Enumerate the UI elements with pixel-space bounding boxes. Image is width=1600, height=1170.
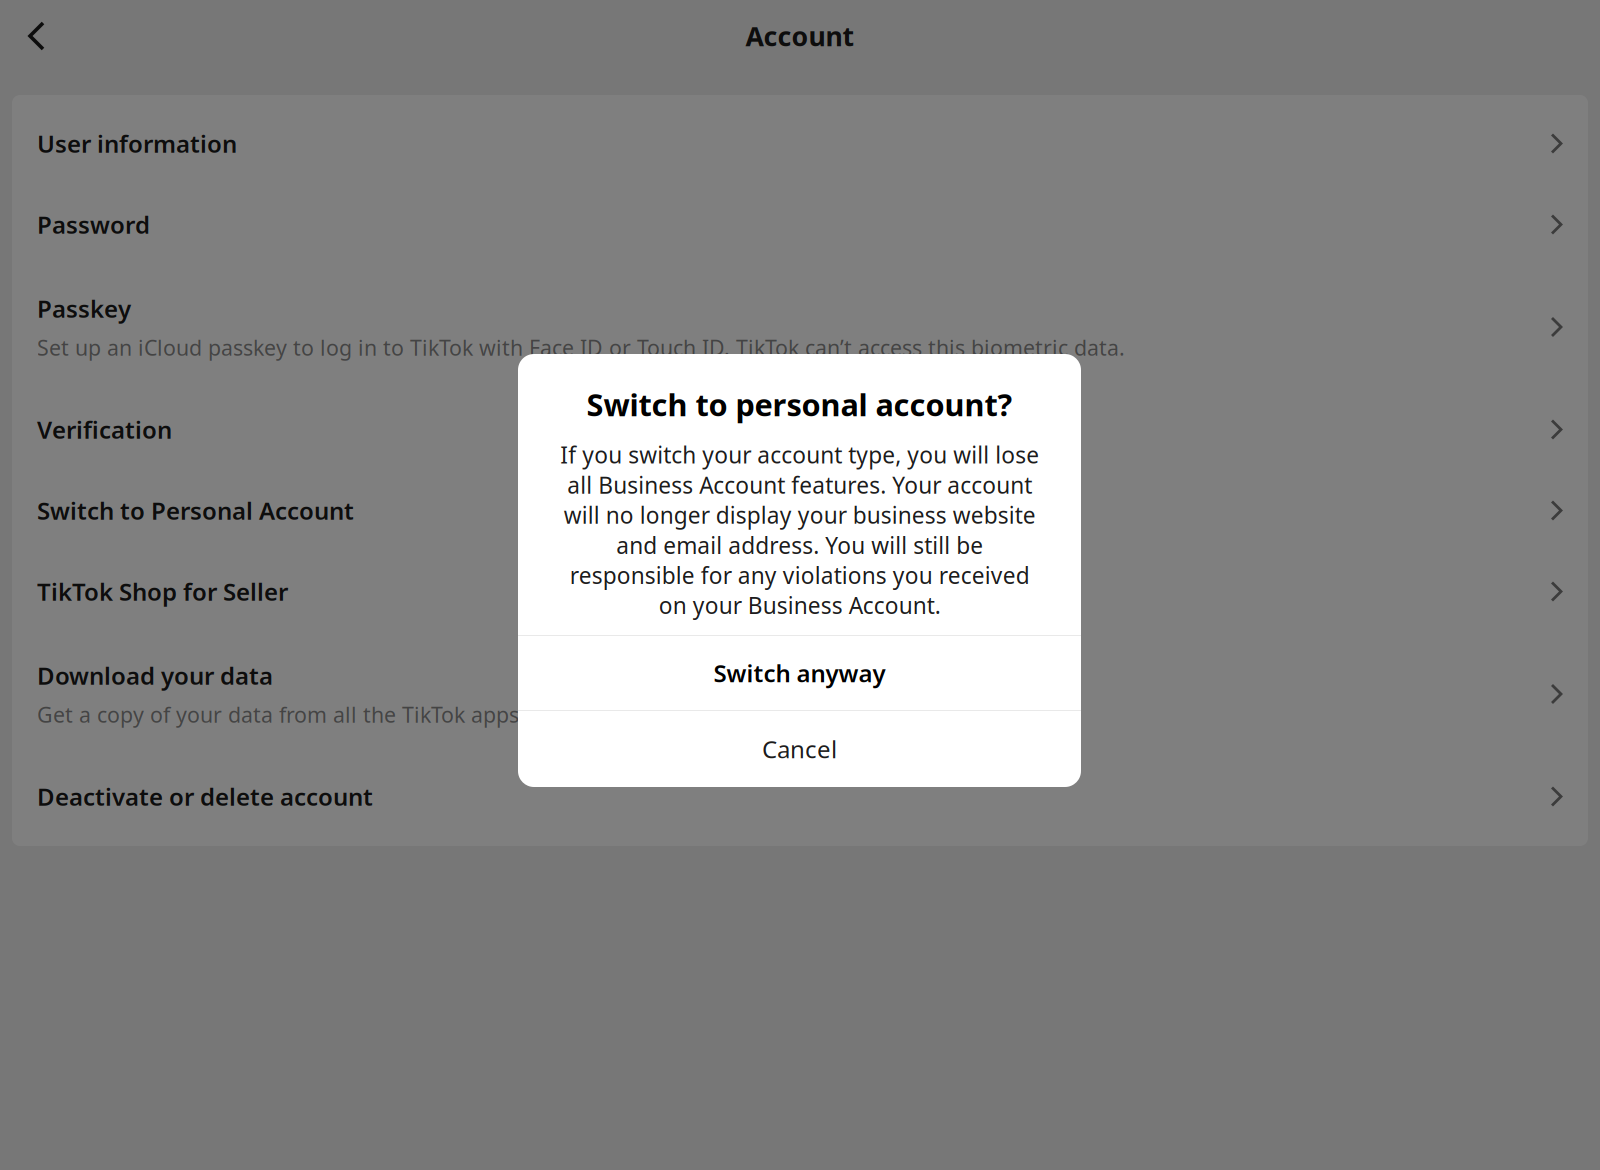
button[interactable]: Cancel (518, 711, 1081, 787)
staticText: Cancel (762, 733, 837, 765)
staticText: Account (745, 18, 854, 54)
staticText: If you switch your account type, you wil… (560, 440, 1039, 620)
staticText: Download your data (37, 659, 273, 691)
button[interactable]: Passkey (12, 265, 1588, 389)
staticText: TikTok Shop for Seller (37, 576, 288, 607)
button[interactable]: TikTok Shop for Seller (12, 551, 1588, 632)
staticText: Verification (37, 414, 172, 445)
staticText: Switch to personal account? (586, 384, 1012, 425)
button[interactable]: User information (12, 103, 1588, 184)
staticText: Switch anyway (713, 657, 885, 689)
button[interactable]: Switch to Personal Account (12, 470, 1588, 551)
button[interactable]: Download your data (12, 632, 1588, 756)
staticText: User information (37, 128, 237, 159)
button[interactable]: Password (12, 184, 1588, 265)
staticText: Deactivate or delete account (37, 781, 373, 812)
staticText: Set up an iCloud passkey to log in to Ti… (37, 333, 1125, 362)
staticText: Switch to Personal Account (37, 495, 354, 526)
button[interactable]: Switch anyway (518, 636, 1081, 710)
staticText: Passkey (37, 292, 131, 324)
button[interactable]: Back (0, 0, 72, 72)
button[interactable]: Deactivate or delete account (12, 756, 1588, 837)
staticText: Get a copy of your data from all the Tik… (37, 700, 609, 729)
staticText: Password (37, 209, 150, 240)
button[interactable]: Verification (12, 389, 1588, 470)
